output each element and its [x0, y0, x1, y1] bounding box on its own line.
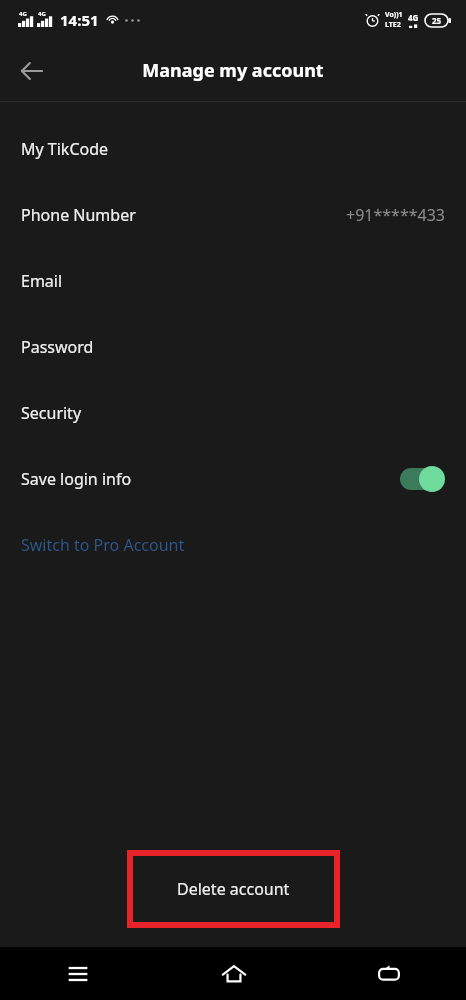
staticText: 14:51 — [60, 10, 99, 30]
staticText: Manage my account — [142, 58, 324, 83]
staticText: 25 — [432, 15, 442, 26]
staticText: LTE2 — [385, 20, 401, 30]
button[interactable]: Home — [156, 947, 311, 1000]
staticText: Security — [21, 402, 82, 424]
staticText: Delete account — [177, 878, 290, 900]
button[interactable]: Back — [8, 47, 56, 95]
button[interactable]: Password — [0, 314, 466, 380]
staticText: My TikCode — [21, 138, 109, 160]
button[interactable]: My TikCode — [0, 116, 466, 182]
button[interactable]: Save login info toggle — [400, 466, 445, 492]
staticText: 4G — [408, 12, 419, 23]
button[interactable]: Delete account — [127, 850, 340, 928]
button[interactable]: Recent apps — [0, 947, 156, 1000]
staticText: Switch to Pro Account — [21, 534, 185, 556]
staticText: Email — [21, 270, 63, 292]
staticText: Password — [21, 336, 94, 358]
button[interactable]: Back — [311, 947, 466, 1000]
button[interactable]: Switch to Pro Account — [0, 512, 466, 578]
staticText: +91*****433 — [346, 204, 445, 226]
staticText: Vo))1 — [385, 10, 403, 20]
button[interactable]: Save login info — [0, 446, 466, 512]
button[interactable]: Email — [0, 248, 466, 314]
button[interactable]: Phone Number — [0, 182, 466, 248]
staticText: 4G — [19, 10, 27, 18]
staticText: Phone Number — [21, 204, 136, 226]
staticText: 4G — [38, 10, 46, 18]
staticText: Save login info — [21, 468, 132, 490]
button[interactable]: Security — [0, 380, 466, 446]
